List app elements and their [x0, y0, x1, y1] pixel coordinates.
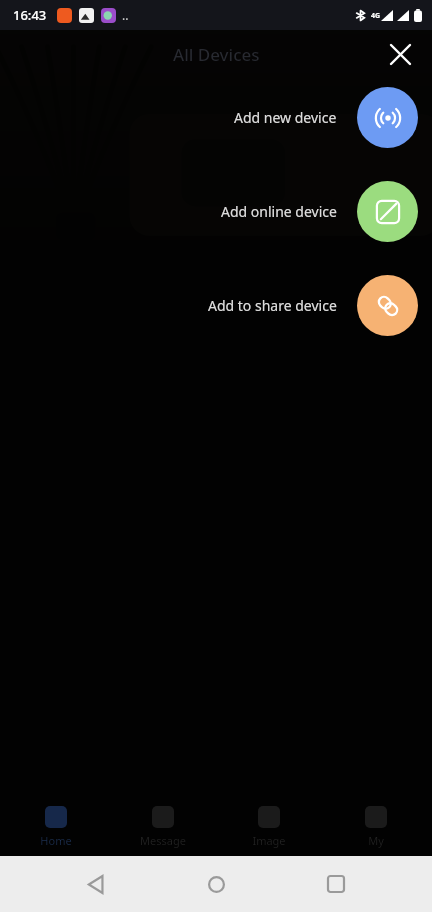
button[interactable]: Recents — [312, 860, 360, 908]
staticText: .. — [122, 7, 129, 23]
button[interactable]: Message — [113, 798, 213, 856]
staticText: Add to share device — [208, 296, 337, 315]
staticText: Message — [140, 833, 186, 848]
button[interactable]: Add new device — [0, 87, 432, 148]
button[interactable]: Add online device — [0, 181, 432, 242]
button[interactable]: Close — [380, 34, 420, 74]
staticText: Add online device — [221, 202, 337, 221]
staticText: All Devices — [173, 43, 260, 66]
staticText: Image — [252, 833, 286, 848]
staticText: Add new device — [234, 108, 337, 127]
staticText: Home — [40, 833, 72, 848]
staticText: 4G — [371, 11, 381, 21]
button[interactable]: Home — [6, 798, 106, 856]
staticText: 16:43 — [13, 6, 47, 24]
button[interactable]: Add to share device — [0, 275, 432, 336]
button[interactable]: Image — [219, 798, 319, 856]
staticText: My — [368, 833, 384, 848]
button[interactable]: Home — [192, 860, 240, 908]
button[interactable]: My — [326, 798, 426, 856]
button[interactable]: Back — [72, 860, 120, 908]
